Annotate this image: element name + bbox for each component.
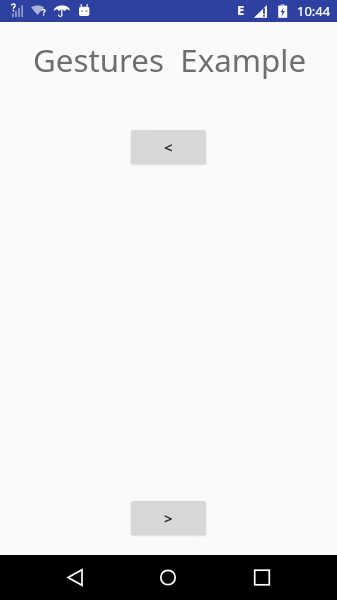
staticText: Gestures Example	[33, 39, 307, 82]
staticText: >	[164, 508, 173, 528]
button[interactable]: >	[131, 501, 206, 535]
staticText: <	[164, 137, 173, 157]
staticText: 10:44	[297, 2, 331, 20]
button[interactable]: <	[131, 130, 206, 164]
button[interactable]: Back	[53, 559, 97, 596]
button[interactable]: Home	[146, 559, 190, 596]
button[interactable]: Recents	[240, 559, 284, 596]
staticText: E	[237, 1, 245, 19]
